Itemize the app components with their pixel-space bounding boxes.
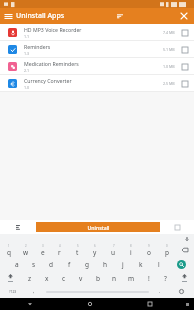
staticText: 1.1 <box>24 34 30 39</box>
staticText: n <box>112 274 117 283</box>
staticText: k <box>139 260 143 269</box>
staticText: 2.1 <box>24 68 30 73</box>
button[interactable]: Sort order <box>0 220 36 234</box>
button[interactable]: , <box>25 285 43 298</box>
button[interactable]: Select all apps <box>160 220 194 234</box>
staticText: i <box>130 248 132 257</box>
button[interactable]: 1 <box>0 243 17 257</box>
button[interactable]: Emoji <box>169 285 194 298</box>
button[interactable]: Space <box>43 285 151 298</box>
button[interactable]: 6 <box>86 243 104 257</box>
button[interactable]: Recent apps <box>120 298 180 310</box>
staticText: q <box>7 248 11 257</box>
staticText: y <box>93 248 97 257</box>
staticText: g <box>85 260 89 269</box>
staticText: 3 <box>42 244 44 248</box>
staticText: 1 <box>8 244 10 248</box>
button[interactable]: Medication Reminders <box>0 58 194 74</box>
button[interactable]: j <box>114 257 132 271</box>
button[interactable]: Voice input <box>180 234 194 243</box>
button[interactable]: 8 <box>122 243 140 257</box>
staticText: x <box>45 274 49 283</box>
button[interactable]: . <box>151 285 169 298</box>
button[interactable]: x <box>38 271 55 285</box>
button[interactable]: n <box>106 271 123 285</box>
staticText: 2 <box>25 244 27 248</box>
button[interactable]: 5 <box>68 243 86 257</box>
staticText: . <box>159 288 161 295</box>
button[interactable]: ? <box>157 271 174 285</box>
button[interactable]: h <box>96 257 114 271</box>
button[interactable]: m <box>123 271 140 285</box>
staticText: w <box>23 248 29 257</box>
staticText: e <box>41 248 45 257</box>
button[interactable]: c <box>55 271 72 285</box>
staticText: z <box>28 274 32 283</box>
staticText: ! <box>148 274 150 283</box>
button[interactable]: a <box>8 257 25 271</box>
button[interactable]: f <box>60 257 78 271</box>
button[interactable]: Uninstall <box>36 222 160 232</box>
button[interactable]: 3 <box>34 243 51 257</box>
staticText: c <box>62 274 66 283</box>
staticText: v <box>79 274 83 283</box>
staticText: d <box>49 260 53 269</box>
button[interactable]: ! <box>140 271 157 285</box>
staticText: f <box>68 260 71 269</box>
button[interactable]: l <box>150 257 168 271</box>
button[interactable]: Currency Converter <box>0 75 194 91</box>
staticText: p <box>165 248 169 257</box>
button[interactable]: b <box>89 271 106 285</box>
button[interactable]: Select Currency Converter <box>178 77 191 90</box>
button[interactable]: Reminders <box>0 41 194 57</box>
staticText: j <box>122 260 124 269</box>
button[interactable]: Menu <box>0 8 16 24</box>
staticText: 1.0 <box>24 85 30 90</box>
button[interactable]: Backspace <box>176 243 194 257</box>
staticText: 7.4 MB <box>163 30 175 35</box>
button[interactable]: g <box>78 257 96 271</box>
button[interactable]: Search <box>168 257 194 271</box>
staticText: 7 <box>113 244 115 248</box>
button[interactable]: 9 <box>140 243 158 257</box>
button[interactable]: Select HD MP3 Voice Recorder <box>178 26 191 39</box>
button[interactable]: Select Reminders <box>178 43 191 56</box>
button[interactable]: s <box>25 257 42 271</box>
staticText: Uninstall Apps <box>16 11 65 21</box>
staticText: o <box>147 248 151 257</box>
staticText: 0 <box>166 244 168 248</box>
staticText: l <box>158 260 160 269</box>
staticText: 6 <box>94 244 96 248</box>
staticText: ?123 <box>9 289 17 294</box>
staticText: s <box>32 260 36 269</box>
button[interactable]: 2 <box>17 243 34 257</box>
staticText: 1.0 MB <box>163 64 175 69</box>
staticText: h <box>103 260 108 269</box>
staticText: a <box>15 260 19 269</box>
staticText: 1.3 <box>24 51 30 56</box>
button[interactable]: Shift <box>174 271 194 285</box>
button[interactable]: z <box>21 271 38 285</box>
button[interactable]: Select Medication Reminders <box>178 60 191 73</box>
staticText: , <box>33 288 35 295</box>
button[interactable]: k <box>132 257 150 271</box>
staticText: r <box>58 248 61 257</box>
staticText: Medication Reminders <box>24 60 79 67</box>
button[interactable]: 0 <box>158 243 176 257</box>
button[interactable]: 4 <box>51 243 68 257</box>
button[interactable]: 7 <box>104 243 122 257</box>
staticText: Reminders <box>24 43 51 50</box>
button[interactable]: v <box>72 271 89 285</box>
button[interactable]: d <box>42 257 60 271</box>
button[interactable]: Home <box>60 298 120 310</box>
button[interactable]: ?123 <box>0 285 25 298</box>
staticText: HD MP3 Voice Recorder <box>24 26 82 33</box>
button[interactable]: HD MP3 Voice Recorder <box>0 24 194 40</box>
button[interactable]: Shift <box>0 271 21 285</box>
staticText: 2.5 MB <box>163 81 175 86</box>
button[interactable]: Back <box>0 298 60 310</box>
staticText: 4 <box>59 244 61 248</box>
staticText: Currency Converter <box>24 77 72 84</box>
button[interactable]: Close <box>176 8 192 24</box>
button[interactable]: Sort <box>112 8 128 24</box>
